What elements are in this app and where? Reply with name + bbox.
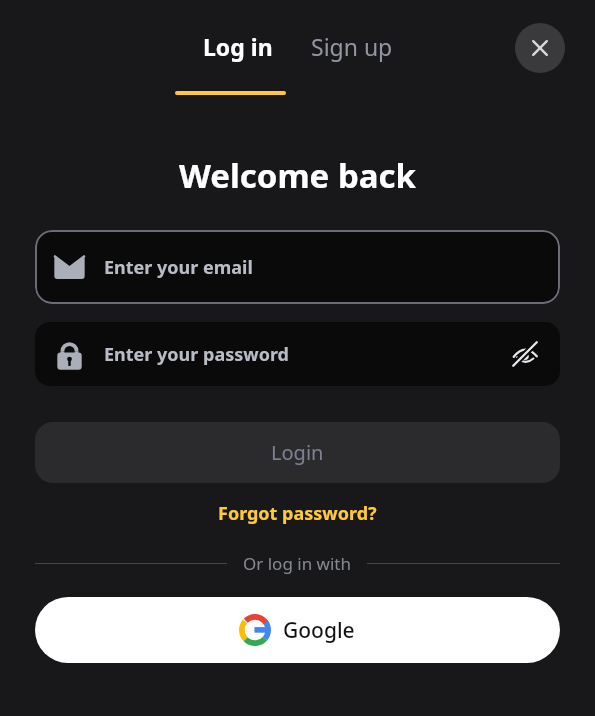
button[interactable]: Login [35, 422, 560, 483]
staticText: Enter your email [104, 255, 253, 280]
staticText: Google [283, 616, 355, 645]
button[interactable]: Google [35, 597, 560, 663]
button[interactable]: Enter your email [35, 230, 560, 304]
button[interactable]: Enter your password [35, 322, 560, 386]
button[interactable]: Forgot password? [210, 497, 385, 530]
staticText: Login [271, 439, 324, 466]
staticText: Or log in with [243, 552, 351, 575]
staticText: Welcome back [0, 153, 595, 198]
staticText: Forgot password? [218, 501, 377, 526]
button[interactable]: Log in [199, 29, 277, 64]
button[interactable]: Sign up [307, 29, 397, 64]
staticText: Sign up [311, 31, 393, 62]
button[interactable]: Close [515, 23, 565, 73]
staticText: Enter your password [104, 342, 508, 367]
staticText: Log in [203, 31, 273, 62]
button[interactable]: Show password [508, 337, 542, 371]
